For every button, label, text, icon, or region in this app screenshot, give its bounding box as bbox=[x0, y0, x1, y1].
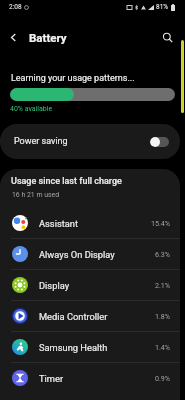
button[interactable]: Display bbox=[0, 270, 180, 300]
button[interactable]: Assistant bbox=[0, 208, 180, 238]
staticText: 16 h 21 m used bbox=[12, 191, 60, 199]
button[interactable]: Power saving bbox=[0, 124, 180, 159]
staticText: Always On Display bbox=[39, 249, 155, 260]
staticText: Learning your usage patterns... bbox=[11, 73, 135, 84]
staticText: Assistant bbox=[39, 218, 151, 229]
staticText: 15.4% bbox=[151, 219, 171, 227]
staticText: Media Controller bbox=[39, 311, 155, 322]
button[interactable]: Back bbox=[0, 24, 26, 50]
staticText: Timer bbox=[39, 373, 155, 384]
staticText: Samsung Health bbox=[39, 342, 155, 353]
staticText: 2:08 bbox=[9, 3, 22, 11]
staticText: 0.9% bbox=[155, 374, 171, 382]
staticText: Display bbox=[39, 280, 155, 291]
staticText: 81% bbox=[156, 3, 169, 11]
button[interactable]: Timer bbox=[0, 363, 180, 393]
staticText: Battery bbox=[29, 31, 67, 44]
staticText: 1.8% bbox=[155, 312, 171, 320]
button[interactable]: Media Controller bbox=[0, 301, 180, 331]
staticText: Usage since last full charge bbox=[11, 176, 122, 187]
button[interactable]: Samsung Health bbox=[0, 332, 180, 362]
staticText: 2.1% bbox=[155, 281, 171, 289]
staticText: Power saving bbox=[14, 136, 68, 147]
staticText: 1.4% bbox=[155, 343, 171, 351]
staticText: 6.3% bbox=[155, 250, 171, 258]
button[interactable]: Always On Display bbox=[0, 239, 180, 269]
button[interactable]: Search bbox=[156, 26, 178, 48]
staticText: 40% available bbox=[10, 105, 53, 113]
